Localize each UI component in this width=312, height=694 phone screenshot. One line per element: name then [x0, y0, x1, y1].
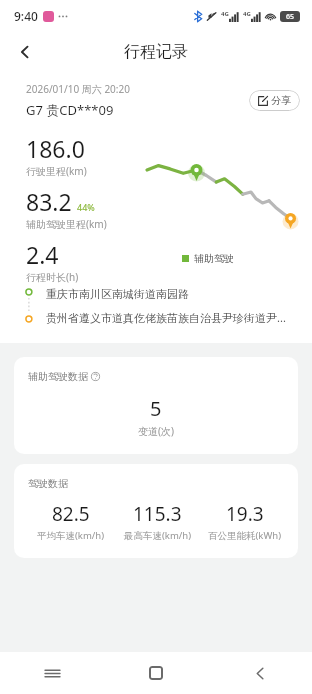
staticText: 19.3 [226, 501, 264, 527]
button[interactable]: Back [208, 652, 312, 694]
staticText: 分享 [271, 94, 291, 107]
staticText: 2026/01/10 周六 20:20 [26, 82, 130, 96]
staticText: 5 [150, 395, 162, 422]
button[interactable]: Recent apps [0, 652, 104, 694]
staticText: 4G [243, 10, 251, 18]
staticText: 115.3 [133, 501, 182, 527]
staticText: 2.4 [26, 239, 59, 270]
staticText: 行程时长(h) [26, 270, 79, 283]
staticText: 最高车速(km/h) [124, 529, 192, 542]
button[interactable]: 分享 [249, 90, 300, 111]
staticText: 驾驶数据 [28, 477, 68, 490]
staticText: 83.2 [26, 186, 72, 217]
button[interactable]: 辅助驾驶数据 [14, 357, 298, 454]
staticText: 186.0 [26, 133, 85, 164]
staticText: 82.5 [52, 501, 90, 527]
staticText: 变道(次) [138, 424, 174, 438]
staticText: 9:40 [14, 8, 38, 24]
staticText: 65 [286, 12, 295, 22]
button[interactable]: Back [8, 35, 42, 69]
staticText: 重庆市南川区南城街道南园路 [46, 287, 189, 301]
staticText: 4G [221, 10, 229, 18]
staticText: 贵州省遵义市道真仡佬族苗族自治县尹珍街道尹... [46, 310, 286, 325]
staticText: G7 贵CD***09 [26, 101, 114, 119]
button[interactable]: 驾驶数据 [14, 464, 298, 558]
button[interactable]: Home [104, 652, 208, 694]
staticText: 百公里能耗(kWh) [208, 529, 281, 542]
staticText: 行程记录 [124, 42, 188, 62]
staticText: 辅助驾驶数据 [28, 370, 88, 383]
staticText: 辅助驾驶里程(km) [26, 217, 107, 231]
staticText: 平均车速(km/h) [37, 529, 105, 542]
staticText: 辅助驾驶 [194, 252, 234, 265]
staticText: 44% [77, 201, 95, 213]
staticText: 行驶里程(km) [26, 164, 87, 178]
